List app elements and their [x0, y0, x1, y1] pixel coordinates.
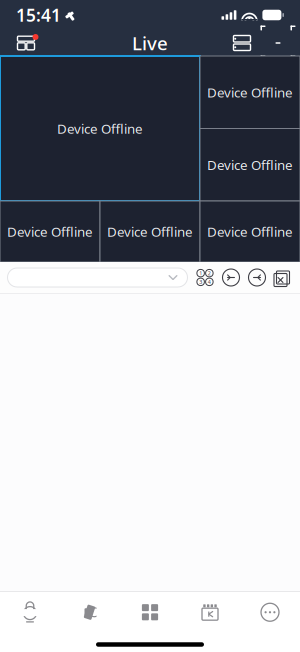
button[interactable]: Camera 5, device offline	[100, 201, 200, 262]
button[interactable]: Camera 3, device offline	[200, 128, 300, 201]
button[interactable]: Select channel	[7, 268, 187, 287]
button[interactable]: Camera 1, device offline	[0, 56, 200, 201]
button[interactable]: Close all	[273, 268, 292, 287]
button[interactable]: Playback	[180, 595, 240, 629]
staticText: 3	[199, 278, 202, 285]
staticText: Device Offline	[57, 120, 143, 137]
button[interactable]: Camera 2, device offline	[200, 56, 300, 128]
button[interactable]: Microphone	[0, 595, 60, 629]
staticText: Device Offline	[207, 223, 293, 240]
button[interactable]: Audio	[60, 595, 120, 629]
staticText: Device Offline	[207, 83, 293, 101]
button[interactable]: More	[240, 595, 300, 629]
staticText: 1	[199, 270, 202, 277]
button[interactable]: Camera 4, device offline	[0, 201, 100, 262]
staticText: Live	[132, 31, 168, 55]
button[interactable]: Next page	[247, 268, 266, 287]
button[interactable]: Previous page	[221, 268, 240, 287]
staticText: 2	[208, 270, 211, 277]
staticText: Device Offline	[7, 223, 93, 240]
button[interactable]: Device list	[229, 30, 255, 56]
staticText: 4	[208, 278, 211, 285]
button[interactable]: Layouts	[9, 30, 43, 56]
button[interactable]: Split screen	[120, 595, 180, 629]
staticText: Device Offline	[207, 156, 293, 174]
staticText: Device Offline	[107, 223, 193, 240]
staticText: 15:41	[16, 3, 61, 26]
button[interactable]: Channel selection	[195, 268, 214, 287]
button[interactable]: Camera 6, device offline	[200, 201, 300, 262]
button[interactable]: Full screen	[265, 30, 291, 56]
